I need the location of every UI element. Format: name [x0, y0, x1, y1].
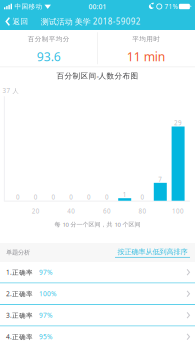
staticText: 0: [87, 193, 91, 201]
staticText: 97%: [39, 311, 52, 320]
staticText: 100%: [39, 289, 56, 298]
staticText: 60: [103, 207, 111, 215]
button[interactable]: 按正确率从低到高排序: [115, 247, 190, 258]
staticText: 0: [16, 193, 20, 201]
staticText: 80: [138, 207, 146, 215]
staticText: 返回: [13, 17, 29, 26]
button[interactable]: 2.正确率: [0, 283, 195, 304]
button[interactable]: 4.正确率: [0, 326, 195, 347]
staticText: 71%: [164, 2, 177, 11]
staticText: 1.正确率: [6, 268, 33, 277]
staticText: 0: [105, 193, 109, 201]
staticText: 0: [34, 193, 38, 201]
staticText: 百分制区间-人数分布图: [56, 70, 138, 81]
staticText: 百分制平均分: [28, 35, 70, 43]
staticText: 95%: [39, 332, 52, 341]
staticText: 1: [123, 190, 127, 199]
staticText: 00:01: [88, 2, 106, 11]
staticText: 97%: [39, 268, 52, 277]
staticText: 测试活动 美学 2018-59092: [41, 16, 141, 27]
staticText: 11 min: [127, 48, 166, 65]
staticText: 93.6: [37, 48, 61, 65]
staticText: 0: [51, 193, 55, 201]
staticText: 按正确率从低到高排序: [117, 247, 187, 256]
staticText: 平均用时: [132, 35, 160, 43]
staticText: 0: [140, 193, 144, 201]
staticText: 29: [174, 119, 182, 127]
button[interactable]: 3.正确率: [0, 305, 195, 325]
staticText: 40: [67, 207, 75, 215]
staticText: 单题分析: [6, 249, 30, 256]
staticText: 每 10 分一个区间，共 10 个区间: [54, 220, 140, 228]
staticText: 3.正确率: [6, 311, 33, 320]
staticText: 4.正确率: [6, 332, 33, 341]
staticText: 0: [69, 193, 73, 201]
staticText: 中国移动: [14, 2, 42, 11]
staticText: 20: [32, 207, 40, 215]
button[interactable]: 1.正确率: [0, 262, 195, 282]
staticText: 2.正确率: [6, 289, 33, 298]
staticText: 100: [172, 207, 184, 215]
staticText: 37 人: [3, 86, 19, 95]
staticText: 7: [158, 175, 162, 183]
button[interactable]: 返回: [0, 13, 33, 30]
